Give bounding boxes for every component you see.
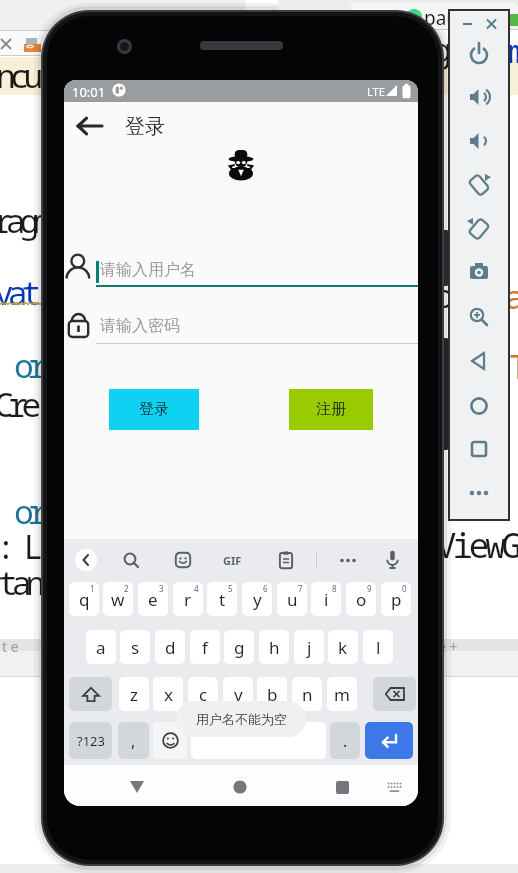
staticText: w (111, 588, 125, 611)
staticText: f (202, 636, 208, 659)
button[interactable]: v (223, 677, 253, 711)
button[interactable] (153, 722, 187, 759)
button[interactable]: k (328, 630, 358, 664)
staticText: 用户名不能为空 (196, 711, 287, 727)
staticText: 请输入用户名 (100, 260, 196, 280)
button[interactable]: GIF (219, 548, 247, 570)
staticText: s (131, 636, 140, 659)
staticText: 注册 (316, 400, 346, 419)
button[interactable] (336, 781, 349, 794)
staticText: o (356, 588, 367, 611)
button[interactable] (463, 81, 495, 113)
button[interactable]: h (259, 630, 289, 664)
button[interactable]: c (188, 677, 218, 711)
staticText: h (269, 636, 280, 659)
button[interactable] (463, 345, 495, 377)
button[interactable] (482, 14, 502, 34)
button[interactable] (69, 677, 112, 711)
staticText: g (234, 636, 245, 659)
button[interactable] (463, 125, 495, 157)
button[interactable]: r (173, 582, 203, 616)
staticText: . (343, 730, 348, 752)
button[interactable]: s (120, 630, 150, 664)
button[interactable] (191, 722, 326, 759)
button[interactable] (130, 781, 144, 793)
staticText: 0 (402, 583, 407, 594)
button[interactable] (77, 116, 103, 136)
button[interactable] (463, 433, 495, 465)
button[interactable]: o (346, 582, 376, 616)
staticText: 3 (159, 583, 164, 594)
button[interactable]: t (207, 582, 237, 616)
button[interactable]: 登录 (109, 389, 199, 430)
staticText: LTE (367, 84, 385, 99)
staticText: 5 (228, 583, 233, 594)
staticText: z (130, 683, 138, 706)
staticText: 2 (124, 583, 129, 594)
button[interactable]: n (292, 677, 322, 711)
button[interactable]: l (363, 630, 393, 664)
staticText: p (391, 588, 402, 611)
button[interactable]: 注册 (289, 389, 373, 430)
button[interactable]: m (327, 677, 357, 711)
staticText: b (267, 683, 278, 706)
button[interactable]: ?123 (69, 722, 112, 759)
staticText: , (131, 730, 136, 752)
staticText: a (505, 274, 518, 319)
button[interactable] (463, 256, 495, 288)
staticText: u (287, 588, 298, 611)
button[interactable] (387, 782, 402, 793)
staticText: 7 (298, 583, 303, 594)
button[interactable]: z (119, 677, 149, 711)
button[interactable]: j (294, 630, 324, 664)
button[interactable] (64, 310, 418, 345)
button[interactable] (339, 558, 357, 563)
staticText: par (424, 5, 455, 31)
button[interactable]: . (330, 722, 360, 759)
button[interactable] (463, 213, 495, 245)
staticText: GIF (223, 553, 242, 568)
button[interactable] (463, 477, 495, 509)
button[interactable] (64, 252, 418, 288)
button[interactable]: w (103, 582, 133, 616)
button[interactable] (463, 169, 495, 201)
button[interactable] (373, 677, 416, 711)
button[interactable]: b (257, 677, 287, 711)
button[interactable]: x (153, 677, 183, 711)
button[interactable]: d (155, 630, 185, 664)
staticText: 8 (332, 583, 337, 594)
button[interactable] (279, 551, 293, 569)
button[interactable] (123, 552, 140, 569)
button[interactable] (233, 780, 247, 794)
staticText: 9 (367, 583, 372, 594)
button[interactable] (458, 14, 478, 34)
button[interactable]: i (311, 582, 341, 616)
staticText: ragm (0, 198, 48, 243)
button[interactable]: p (381, 582, 411, 616)
button[interactable] (463, 38, 495, 70)
button[interactable] (365, 722, 413, 759)
staticText: vat (0, 270, 36, 315)
button[interactable]: g (224, 630, 254, 664)
staticText: e + (438, 637, 458, 656)
button[interactable]: , (118, 722, 149, 759)
button[interactable] (463, 390, 495, 422)
button[interactable]: q (69, 582, 99, 616)
button[interactable] (175, 552, 191, 568)
button[interactable]: u (277, 582, 307, 616)
button[interactable] (385, 550, 400, 570)
staticText: 10:01 (72, 83, 106, 101)
button[interactable]: y (242, 582, 272, 616)
button[interactable]: a (86, 630, 116, 664)
staticText: k (338, 636, 348, 659)
staticText: m (508, 28, 518, 73)
button[interactable] (75, 549, 97, 571)
button[interactable]: e (138, 582, 168, 616)
staticText: y (253, 588, 262, 611)
button[interactable] (463, 301, 495, 333)
staticText: c (199, 683, 208, 706)
button[interactable]: f (190, 630, 220, 664)
staticText: or (14, 489, 42, 534)
staticText: Cre (0, 382, 36, 427)
staticText: t e (2, 637, 19, 656)
